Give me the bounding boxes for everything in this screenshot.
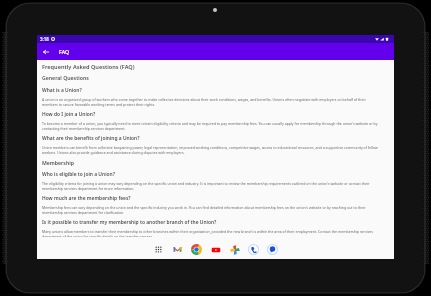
staticText: Frequently Asked Questions (FAQ) bbox=[42, 63, 135, 71]
button[interactable]: Phone bbox=[248, 244, 259, 255]
staticText: A union is an organized group of workers… bbox=[42, 97, 378, 107]
button[interactable]: Gmail bbox=[172, 244, 183, 255]
staticText: General Questions bbox=[42, 74, 89, 81]
button[interactable]: Chrome bbox=[191, 244, 202, 255]
staticText: Is it possible to transfer my membership… bbox=[42, 219, 217, 226]
button[interactable]: Photos bbox=[229, 244, 240, 255]
staticText: The eligibility criteria for joining a u… bbox=[42, 181, 378, 191]
staticText: What is a Union? bbox=[42, 87, 82, 94]
staticText: Membership bbox=[42, 159, 74, 166]
staticText: Membership fees can vary depending on th… bbox=[42, 205, 378, 215]
button[interactable]: Back bbox=[37, 43, 54, 60]
button[interactable]: YouTube bbox=[210, 244, 221, 255]
staticText: Many unions allow members to transfer th… bbox=[42, 229, 378, 239]
staticText: 3:18 bbox=[40, 36, 49, 42]
staticText: What are the benefits of joining a Union… bbox=[42, 135, 140, 142]
staticText: To become a member of a union, you typic… bbox=[42, 121, 378, 131]
staticText: FAQ bbox=[59, 48, 69, 55]
staticText: How do I join a Union? bbox=[42, 111, 96, 118]
staticText: Union members can benefit from collectiv… bbox=[42, 145, 378, 155]
staticText: Who is eligible to join a Union? bbox=[42, 171, 115, 178]
button[interactable]: All apps bbox=[153, 244, 164, 255]
button[interactable]: Messages bbox=[267, 244, 278, 255]
staticText: How much are the membership fees? bbox=[42, 195, 131, 202]
